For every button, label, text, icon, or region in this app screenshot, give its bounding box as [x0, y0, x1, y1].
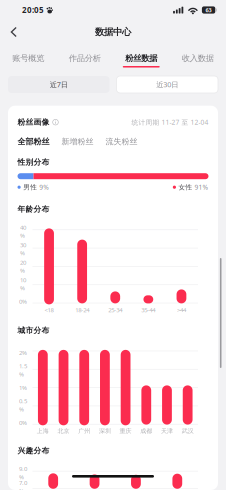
button[interactable]: 账号概览	[0, 44, 56, 74]
staticText: 年龄分布	[17, 204, 49, 214]
staticText: 91%	[194, 183, 208, 192]
staticText: 账号概览	[12, 53, 44, 63]
staticText: 兴趣分布	[17, 446, 49, 455]
staticText: 北京	[57, 427, 69, 435]
staticText: 20:05	[22, 5, 44, 15]
staticText: 7.0%	[19, 479, 27, 490]
staticText: 30%	[20, 241, 26, 257]
staticText: 天津	[161, 427, 173, 435]
staticText: 10%	[20, 276, 26, 292]
staticText: 广州	[78, 427, 90, 435]
staticText: 18-24	[75, 306, 89, 314]
staticText: 男性	[23, 183, 37, 191]
button[interactable]: 新增粉丝	[61, 137, 93, 147]
staticText: 粉丝画像	[17, 117, 49, 127]
staticText: 20%	[20, 258, 26, 274]
staticText: 25-34	[108, 306, 122, 314]
staticText: 性别分布	[17, 157, 49, 167]
staticText: 2%	[19, 348, 27, 357]
staticText: 上海	[37, 427, 49, 435]
button[interactable]: Back	[0, 21, 28, 43]
staticText: 女性	[178, 183, 192, 191]
staticText: 1%	[19, 383, 27, 392]
staticText: 9%	[39, 183, 49, 192]
button[interactable]: 近7日	[8, 76, 109, 93]
staticText: 35-44	[141, 306, 155, 314]
staticText: 63	[206, 6, 212, 14]
staticText: 粉丝数据	[125, 53, 157, 63]
staticText: 统计周期 11-27 至 12-04	[131, 118, 208, 127]
staticText: 成都	[140, 427, 152, 435]
staticText: 数据中心	[95, 26, 131, 38]
staticText: 0%	[19, 297, 27, 305]
staticText: >44	[177, 306, 186, 314]
staticText: 城市分布	[17, 325, 49, 335]
staticText: 作品分析	[69, 53, 101, 63]
staticText: 近7日	[50, 79, 68, 89]
staticText: 流失粉丝	[105, 137, 137, 147]
button[interactable]: 收入数据	[169, 44, 226, 74]
staticText: 1.5%	[19, 362, 27, 378]
staticText: 重庆	[120, 427, 132, 435]
button[interactable]: 作品分析	[56, 44, 113, 74]
staticText: 收入数据	[182, 53, 214, 63]
staticText: 0.5%	[19, 397, 27, 413]
staticText: 0%	[19, 418, 27, 427]
button[interactable]: 全部粉丝	[17, 137, 49, 147]
staticText: 40%	[20, 223, 26, 239]
staticText: <18	[45, 306, 54, 314]
staticText: 武汉	[182, 427, 194, 435]
button[interactable]: 近30日	[116, 76, 218, 93]
staticText: 深圳	[99, 427, 111, 435]
staticText: 近30日	[156, 79, 178, 89]
button[interactable]: 粉丝数据	[113, 44, 169, 74]
staticText: 9.0%	[19, 465, 27, 481]
button[interactable]: 流失粉丝	[105, 137, 137, 147]
staticText: 全部粉丝	[17, 137, 49, 147]
staticText: 新增粉丝	[61, 137, 93, 147]
